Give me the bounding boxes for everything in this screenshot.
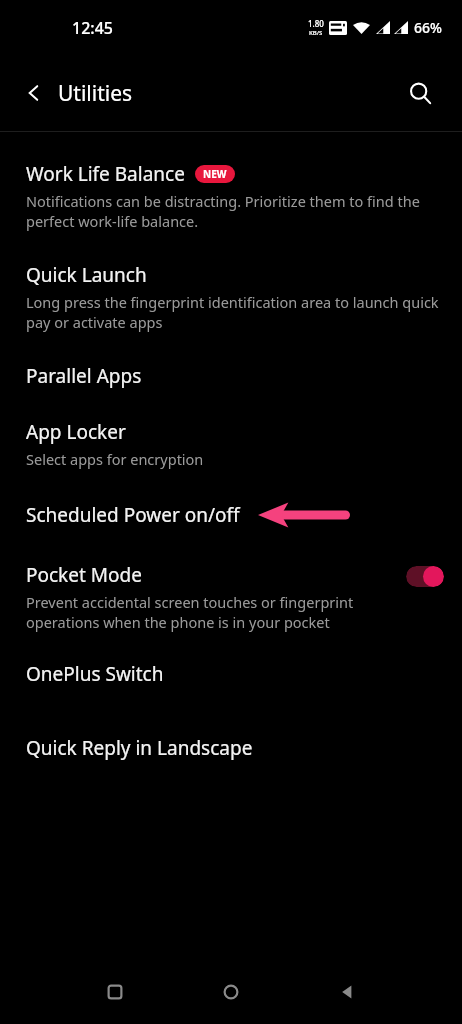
staticText: Long press the fingerprint identificatio…: [26, 292, 439, 333]
staticText: Scheduled Power on/off: [26, 502, 240, 528]
button[interactable]: Search: [398, 71, 442, 115]
staticText: Pocket Mode: [26, 562, 142, 588]
staticText: Prevent accidental screen touches or fin…: [26, 592, 354, 633]
button[interactable]: Work Life Balance: [0, 161, 462, 232]
staticText: Quick Launch: [26, 262, 147, 288]
button[interactable]: Back: [323, 968, 371, 1016]
button[interactable]: Quick Launch: [0, 262, 462, 333]
button[interactable]: Pocket Mode: [0, 562, 462, 633]
staticText: App Locker: [26, 419, 126, 445]
button[interactable]: Home: [207, 968, 255, 1016]
staticText: Notifications can be distracting. Priori…: [26, 191, 420, 232]
staticText: NEW: [203, 167, 227, 181]
button[interactable]: Pocket Mode toggle: [406, 566, 444, 587]
staticText: Work Life Balance: [26, 161, 185, 187]
staticText: KB/S: [309, 29, 323, 37]
button[interactable]: Parallel Apps: [0, 363, 462, 389]
staticText: 1.80: [308, 18, 324, 29]
staticText: Parallel Apps: [26, 363, 142, 389]
button[interactable]: OnePlus Switch: [0, 661, 462, 687]
staticText: Select apps for encryption: [26, 449, 204, 469]
button[interactable]: Recents: [91, 968, 139, 1016]
button[interactable]: App Locker: [0, 419, 462, 469]
staticText: OnePlus Switch: [26, 661, 164, 687]
button[interactable]: Quick Reply in Landscape: [0, 735, 462, 761]
staticText: Utilities: [58, 79, 133, 108]
staticText: Quick Reply in Landscape: [26, 735, 253, 761]
button[interactable]: Back: [14, 73, 54, 113]
button[interactable]: Scheduled Power on/off: [0, 500, 462, 530]
staticText: 66%: [414, 18, 442, 37]
staticText: 12:45: [72, 17, 113, 39]
